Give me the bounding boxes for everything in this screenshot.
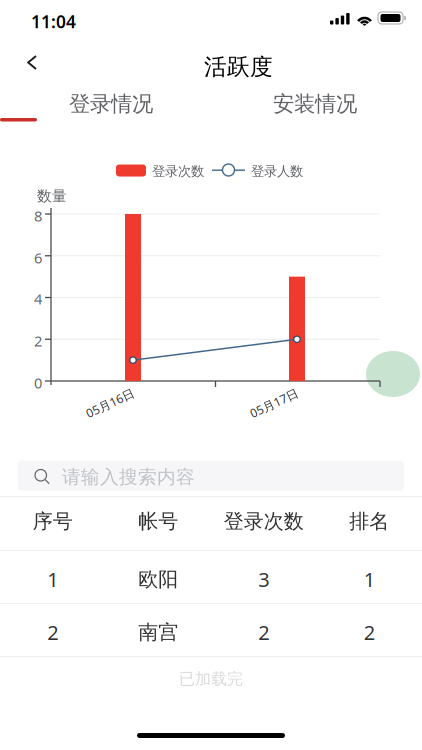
staticText: 6 [34,248,42,267]
staticText: 2 [47,619,58,646]
button[interactable]: 安装情况 [213,91,417,117]
staticText: 帐号 [138,509,178,534]
button[interactable]: 请输入搜索内容 [17,460,404,490]
staticText: 1 [47,566,58,593]
staticText: 登录人数 [251,163,303,179]
button[interactable]: 登录情况 [9,91,213,117]
staticText: 活跃度 [204,53,273,81]
staticText: 登录次数 [152,163,204,179]
button[interactable]: 返回 [18,46,46,79]
staticText: 排名 [349,509,389,534]
staticText: 8 [34,206,42,225]
staticText: 4 [34,289,42,308]
staticText: 序号 [33,509,73,534]
staticText: 请输入搜索内容 [62,465,195,488]
staticText: 2 [258,619,269,646]
staticText: 欧阳 [138,567,178,592]
staticText: 安装情况 [273,91,357,117]
staticText: 11:04 [31,10,76,33]
staticText: 0 [34,373,42,392]
staticText: 05月16日 [84,395,136,411]
staticText: 2 [364,619,375,646]
staticText: 数量 [37,187,67,205]
staticText: 3 [258,566,269,593]
staticText: 05月17日 [248,395,300,411]
staticText: 登录次数 [224,509,304,534]
staticText: 2 [34,331,42,350]
staticText: 南宫 [138,620,178,645]
staticText: 已加载完 [179,669,243,689]
staticText: 1 [364,566,375,593]
staticText: 登录情况 [69,91,153,117]
